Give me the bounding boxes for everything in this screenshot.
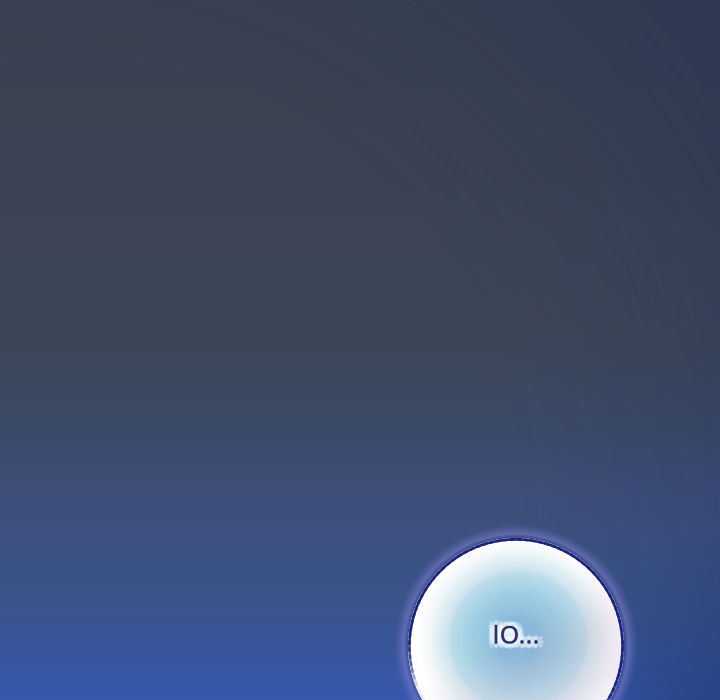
staticText: lO...: [492, 622, 539, 656]
staticText: lO...: [490, 617, 537, 651]
staticText: lO...: [489, 614, 536, 648]
staticText: lO...: [492, 612, 539, 646]
staticText: lO...: [492, 619, 539, 653]
staticText: lO...: [486, 617, 533, 651]
staticText: lO...: [495, 620, 542, 654]
staticText: lO...: [487, 621, 534, 655]
staticText: lO...: [489, 620, 536, 654]
staticText: lO...: [498, 617, 545, 651]
staticText: lO...: [496, 617, 543, 651]
staticText: lO...: [492, 617, 539, 651]
staticText: lO...: [492, 621, 539, 655]
staticText: lO...: [494, 617, 541, 651]
staticText: lO...: [495, 614, 542, 648]
staticText: lO...: [497, 613, 544, 647]
staticText: lO...: [492, 613, 539, 647]
staticText: lO...: [488, 617, 535, 651]
staticText: lO...: [492, 615, 539, 649]
staticText: lO...: [487, 613, 534, 647]
staticText: lO...: [497, 621, 544, 655]
